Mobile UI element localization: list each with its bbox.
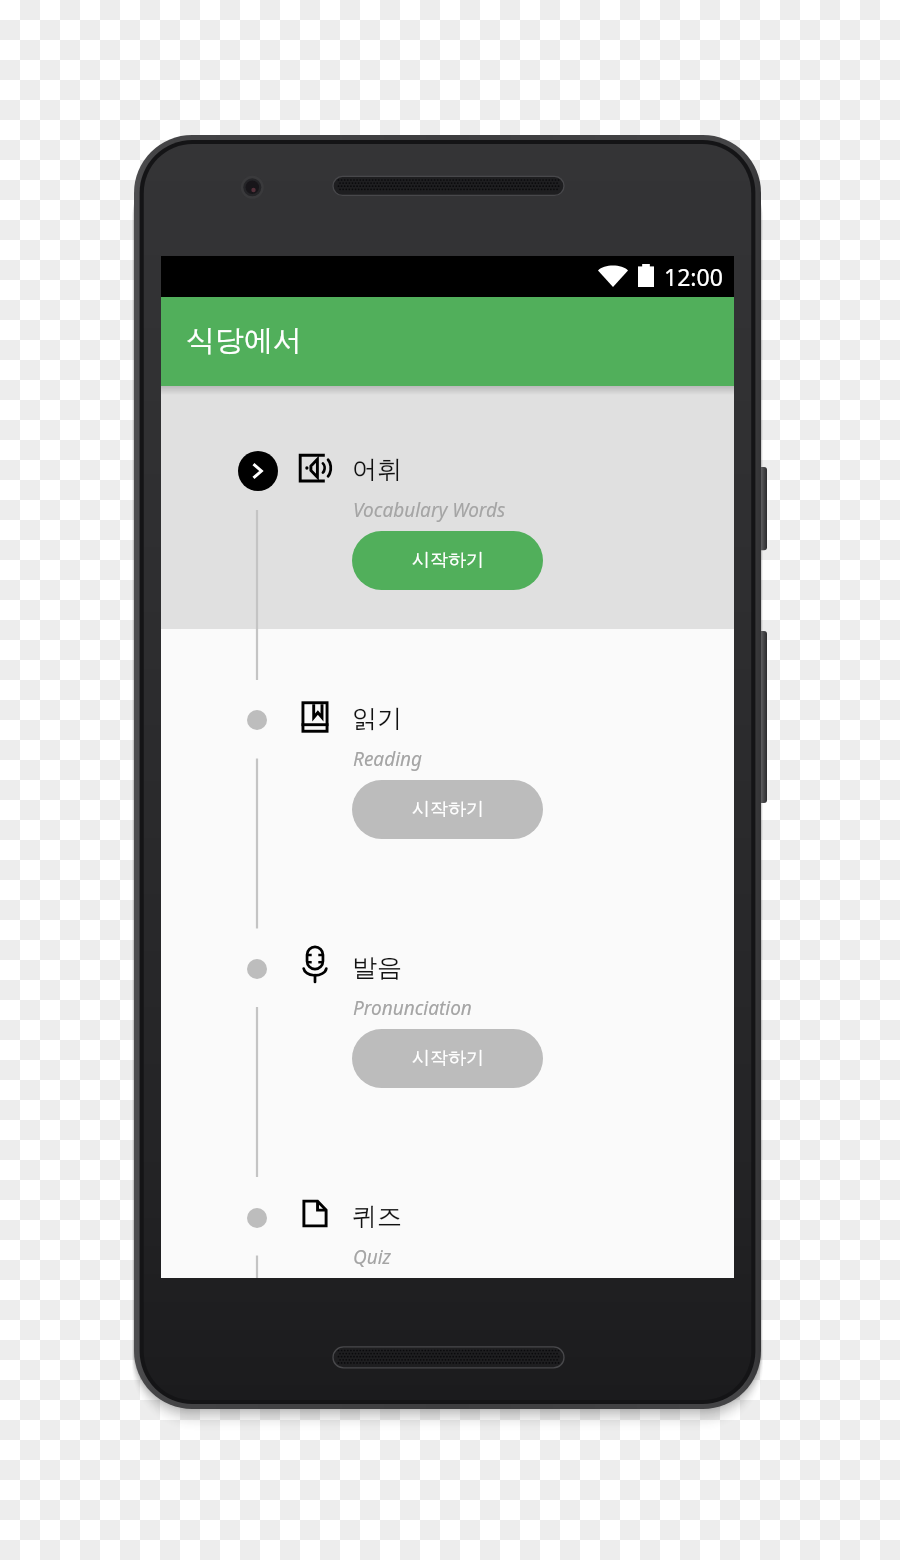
other: Reading book (297, 699, 333, 735)
button[interactable]: Reading book (161, 629, 734, 878)
staticText: 퀴즈 (352, 1201, 402, 1232)
staticText: Pronunciation (353, 995, 472, 1021)
button[interactable]: Current step (161, 386, 734, 629)
staticText: 발음 (352, 952, 402, 983)
staticText: Quiz (353, 1244, 392, 1270)
other: Quiz document (297, 1197, 333, 1233)
staticText: 시작하기 (412, 549, 484, 572)
button[interactable]: 시작하기 (352, 780, 543, 839)
staticText: 어휘 (352, 454, 402, 485)
staticText: Vocabulary Words (353, 497, 506, 523)
button[interactable]: 시작하기 (352, 1029, 543, 1088)
staticText: 읽기 (352, 703, 402, 734)
staticText: 12:00 (664, 261, 723, 292)
button[interactable]: Current step (238, 451, 278, 491)
button[interactable]: Quiz document (161, 1127, 734, 1272)
other: Audio vocabulary (297, 450, 333, 486)
staticText: 식당에서 (186, 322, 302, 359)
staticText: 시작하기 (412, 1047, 484, 1070)
button[interactable]: 시작하기 (352, 531, 543, 590)
staticText: 시작하기 (412, 798, 484, 821)
staticText: Reading (353, 746, 423, 772)
other: Microphone (297, 948, 333, 984)
button[interactable]: Microphone (161, 878, 734, 1127)
